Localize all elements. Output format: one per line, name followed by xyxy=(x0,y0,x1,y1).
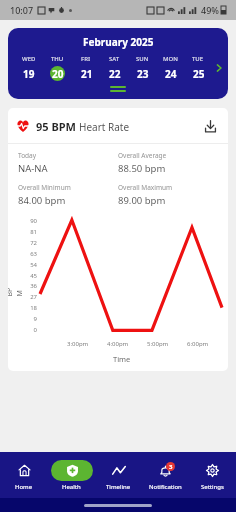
staticText: 24 xyxy=(165,67,177,81)
staticText: 25 xyxy=(193,67,205,81)
button[interactable]: MON xyxy=(156,55,184,81)
button[interactable]: Download xyxy=(200,116,220,136)
staticText: 49% xyxy=(201,4,219,16)
button[interactable]: Settings xyxy=(189,452,236,498)
staticText: Overall Minimum xyxy=(18,183,71,192)
staticText: 10:07 xyxy=(10,4,34,16)
staticText: 36 xyxy=(30,282,37,290)
button[interactable]: FRI xyxy=(72,55,100,81)
staticText: Overall Maximum xyxy=(118,183,173,192)
staticText: TUE xyxy=(192,55,204,63)
staticText: 5:00pm xyxy=(147,340,169,348)
staticText: February 2025 xyxy=(83,35,154,49)
staticText: Timeline xyxy=(106,483,131,491)
staticText: BPM xyxy=(8,283,24,296)
staticText: Home xyxy=(15,483,33,491)
staticText: 72 xyxy=(30,239,37,247)
staticText: THU xyxy=(51,55,64,63)
staticText: 3 xyxy=(169,463,173,471)
button[interactable]: THU xyxy=(43,55,72,81)
staticText: 18 xyxy=(30,304,37,312)
staticText: 3:00pm xyxy=(67,340,89,348)
staticText: 89.00 bpm xyxy=(118,194,166,207)
button[interactable]: WED xyxy=(14,55,43,81)
staticText: 0 xyxy=(33,326,37,334)
button[interactable]: Timeline xyxy=(95,452,142,498)
staticText: 81 xyxy=(30,228,37,236)
button[interactable]: Home xyxy=(0,452,48,498)
staticText: 63 xyxy=(30,250,37,258)
button[interactable]: SAT xyxy=(100,55,128,81)
staticText: 84.00 bpm xyxy=(18,194,66,207)
staticText: 19 xyxy=(23,67,35,81)
button[interactable]: SUN xyxy=(128,55,156,81)
staticText: 21 xyxy=(81,67,93,81)
staticText: 90 xyxy=(30,217,37,225)
button[interactable]: Health xyxy=(48,452,95,498)
staticText: Settings xyxy=(201,483,224,491)
staticText: MON xyxy=(163,55,178,63)
staticText: SAT xyxy=(109,55,120,63)
staticText: 54 xyxy=(30,261,37,269)
staticText: 45 xyxy=(30,272,37,280)
staticText: Time xyxy=(113,354,131,364)
staticText: WED xyxy=(22,55,36,63)
staticText: Overall Average xyxy=(118,151,167,160)
staticText: SUN xyxy=(136,55,149,63)
staticText: 27 xyxy=(30,293,37,301)
button[interactable]: 3 xyxy=(142,452,189,498)
staticText: Notification xyxy=(149,483,182,491)
staticText: 23 xyxy=(137,67,149,81)
staticText: 6:00pm xyxy=(187,340,209,348)
button[interactable]: TUE xyxy=(184,55,212,81)
staticText: 9 xyxy=(33,315,37,323)
staticText: Heart Rate xyxy=(79,120,130,134)
staticText: Today xyxy=(18,151,37,160)
staticText: 95 BPM xyxy=(36,119,79,134)
staticText: Health xyxy=(62,483,81,491)
staticText: 22 xyxy=(109,67,121,81)
staticText: FRI xyxy=(81,55,91,63)
button[interactable]: Next week xyxy=(212,58,226,78)
staticText: NA-NA xyxy=(18,162,48,175)
button[interactable]: February 2025 xyxy=(8,28,228,99)
staticText: 20 xyxy=(52,67,64,81)
staticText: 88.50 bpm xyxy=(118,162,166,175)
staticText: 4:00pm xyxy=(107,340,129,348)
